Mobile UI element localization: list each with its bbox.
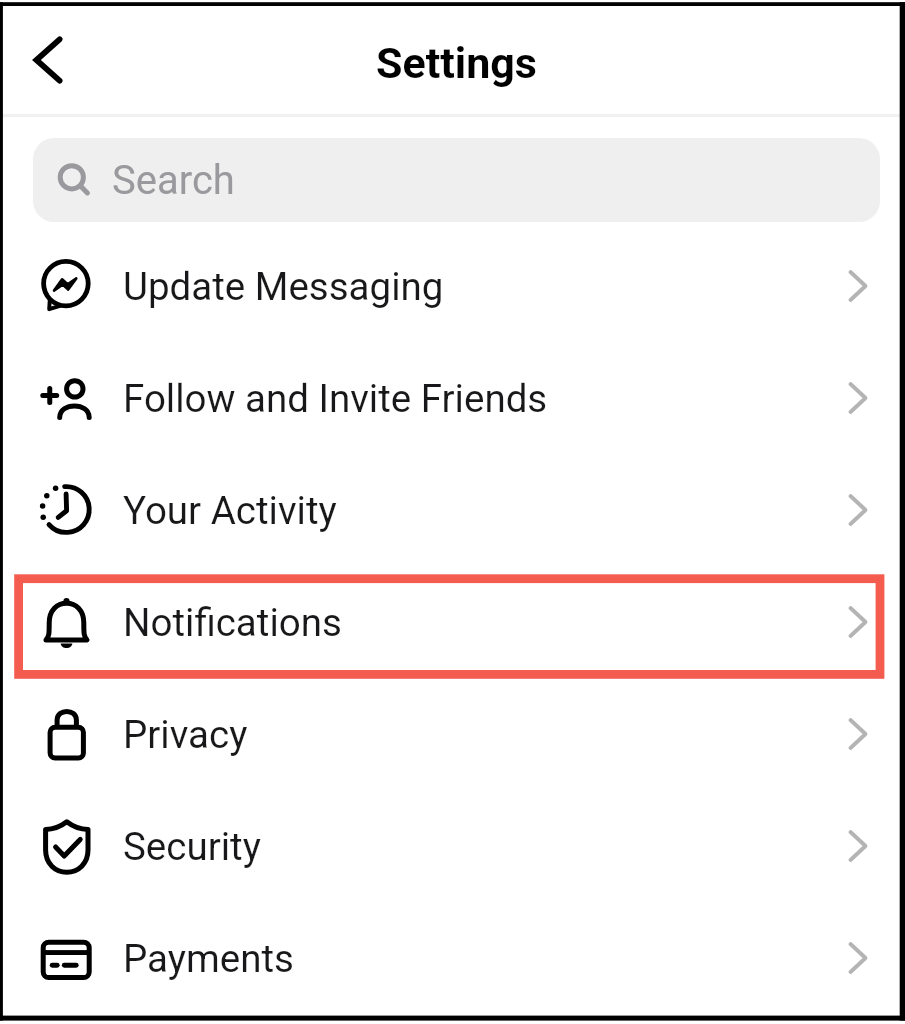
button[interactable]: Follow and Invite Friends bbox=[0, 342, 905, 454]
button[interactable]: Update Messaging bbox=[0, 230, 905, 342]
button[interactable]: Back bbox=[19, 31, 77, 89]
button[interactable]: Search bbox=[33, 138, 880, 222]
staticText: Notifications bbox=[123, 600, 342, 645]
button[interactable]: Your Activity bbox=[0, 454, 905, 566]
button[interactable]: Notifications bbox=[0, 566, 905, 678]
staticText: Follow and Invite Friends bbox=[123, 376, 548, 421]
button[interactable]: Security bbox=[0, 790, 905, 902]
staticText: Security bbox=[123, 824, 261, 869]
staticText: Settings bbox=[376, 38, 537, 88]
button[interactable]: Payments bbox=[0, 902, 905, 1014]
staticText: Your Activity bbox=[123, 488, 337, 533]
button[interactable]: Privacy bbox=[0, 678, 905, 790]
staticText: Privacy bbox=[123, 712, 248, 757]
staticText: Payments bbox=[123, 936, 294, 981]
staticText: Search bbox=[112, 157, 235, 204]
staticText: Update Messaging bbox=[123, 264, 444, 309]
